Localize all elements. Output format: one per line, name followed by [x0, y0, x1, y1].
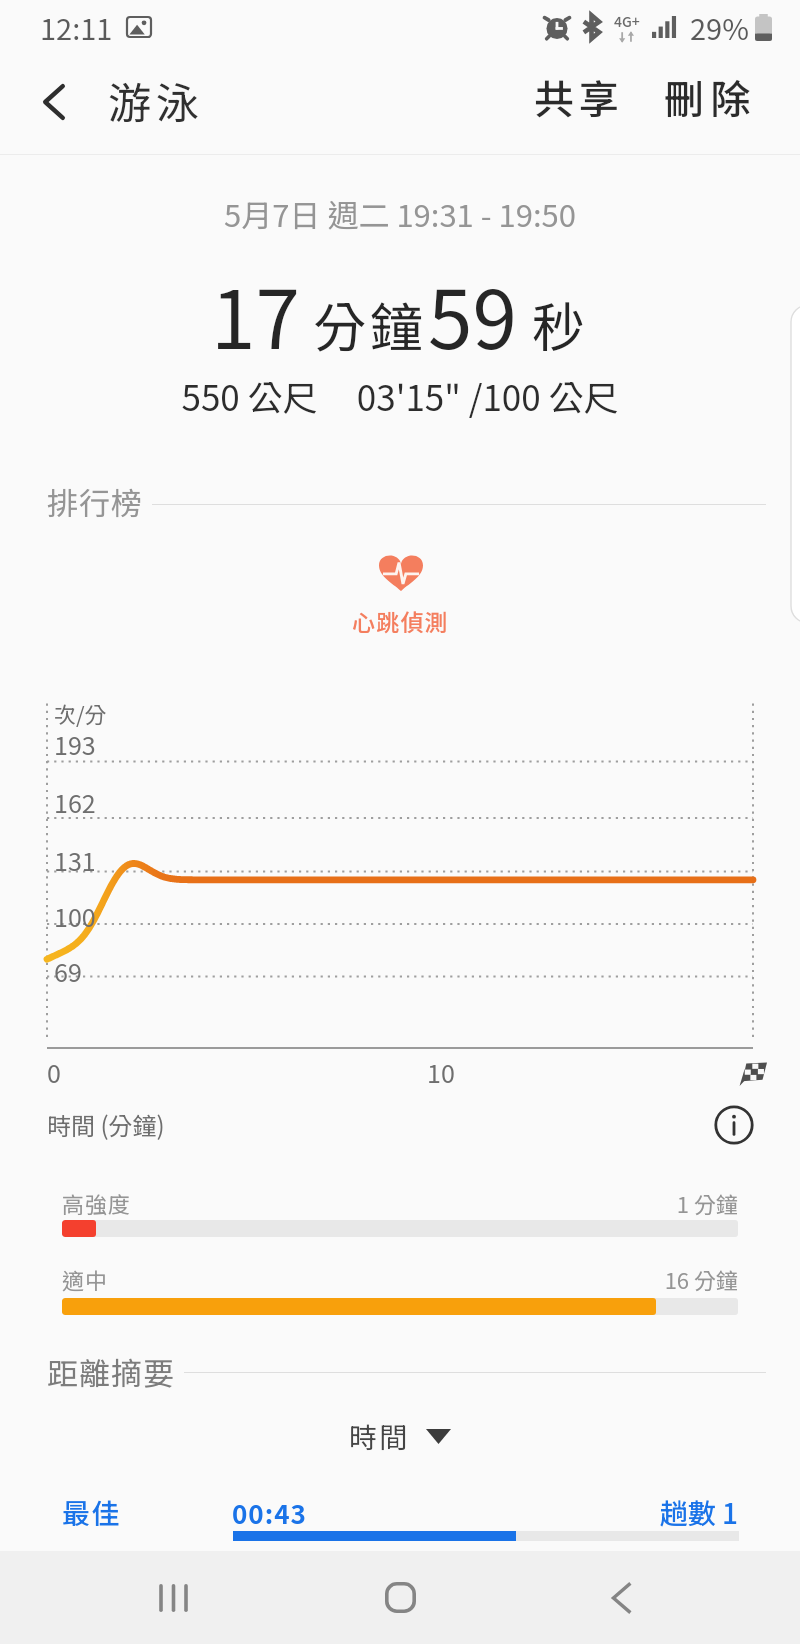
staticText: 550 公尺 03'15" /100 公尺	[0, 370, 800, 421]
button[interactable]: 最佳	[0, 1492, 800, 1552]
staticText: 162	[54, 784, 96, 820]
staticText: 距離摘要	[47, 1349, 175, 1394]
staticText: 秒	[532, 286, 585, 363]
staticText: 趟數 1	[618, 1492, 738, 1533]
staticText: 16 分鐘	[62, 1263, 738, 1295]
staticText: 0	[47, 1054, 61, 1090]
staticText: 00:43	[232, 1494, 307, 1532]
staticText: 共享	[534, 68, 624, 126]
staticText: 適中	[62, 1263, 109, 1295]
staticText: 100	[54, 898, 96, 934]
button[interactable]: 刪除	[648, 52, 773, 142]
staticText: 17	[211, 256, 300, 372]
staticText: 12:11	[40, 6, 113, 48]
staticText: 69	[54, 953, 82, 989]
staticText: 4G+	[614, 11, 640, 31]
staticText: 59	[428, 256, 517, 372]
button[interactable]: Back	[573, 1551, 669, 1644]
staticText: 游泳	[108, 69, 204, 131]
staticText: 29%	[690, 6, 749, 48]
staticText: 時間 (分鐘)	[47, 1107, 165, 1142]
staticText: 排行榜	[47, 479, 143, 524]
button[interactable]: 時間	[337, 1412, 463, 1461]
staticText: 5月7日 週二 19:31 - 19:50	[0, 191, 800, 236]
button[interactable]: Finish	[739, 1062, 767, 1086]
button[interactable]: 心跳偵測	[312, 548, 489, 641]
staticText: 131	[54, 842, 96, 878]
button[interactable]: Recent apps	[125, 1551, 221, 1644]
staticText: 心跳偵測	[352, 604, 449, 637]
staticText: 193	[54, 726, 96, 762]
staticText: 1 分鐘	[62, 1187, 738, 1219]
staticText: 次/分	[54, 697, 107, 729]
staticText: 時間	[349, 1416, 410, 1457]
button[interactable]: 共享	[518, 52, 640, 142]
staticText: 10	[427, 1054, 455, 1090]
staticText: 刪除	[664, 68, 757, 126]
button[interactable]: Home	[352, 1551, 448, 1644]
staticText: 最佳	[62, 1492, 122, 1533]
button[interactable]: Information	[713, 1104, 755, 1146]
staticText: 分鐘	[313, 286, 427, 363]
button[interactable]: Back	[18, 64, 90, 140]
staticText: 高強度	[62, 1187, 132, 1219]
